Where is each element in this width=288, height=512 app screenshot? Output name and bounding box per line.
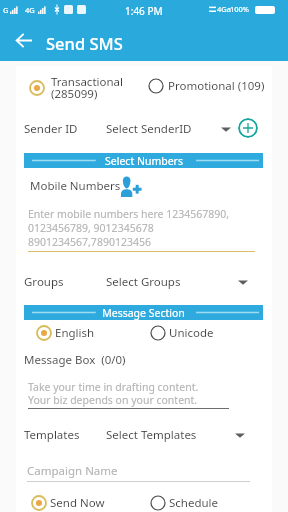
staticText: Unicode	[169, 325, 214, 341]
button[interactable]: English	[36, 323, 95, 343]
staticText: Select SenderID	[106, 121, 192, 137]
staticText: 100%	[230, 4, 250, 14]
staticText: Select Groups	[106, 274, 181, 290]
staticText: Send SMS	[46, 32, 123, 54]
staticText: Message Box (0/0)	[24, 352, 126, 368]
staticText: G	[3, 5, 9, 15]
staticText: Enter mobile numbers here 1234567890, 01…	[28, 207, 256, 249]
staticText: Campaign Name	[27, 463, 118, 479]
staticText: Message Section	[102, 306, 185, 320]
staticText: Schedule	[169, 495, 219, 511]
button[interactable]: Add sender ID	[238, 118, 258, 138]
button[interactable]: Select Groups	[106, 274, 248, 290]
staticText: English	[55, 325, 95, 341]
staticText: Groups	[24, 274, 64, 290]
staticText: 4Ga	[217, 4, 231, 14]
button[interactable]: Select SenderID	[106, 121, 231, 137]
staticText: Select Numbers	[105, 154, 183, 168]
button[interactable]: Send Now	[31, 493, 105, 512]
button[interactable]: Schedule	[150, 493, 219, 512]
staticText: Promotional (109)	[168, 78, 265, 94]
staticText: Take your time in drafting content. Your…	[28, 380, 199, 407]
staticText: Select Templates	[106, 427, 197, 443]
staticText: 1:46 PM	[125, 4, 163, 18]
staticText: 4G	[25, 5, 35, 15]
button[interactable]: Select Templates	[106, 427, 245, 443]
button[interactable]: Back	[10, 26, 38, 54]
button[interactable]: Promotional (109)	[148, 76, 265, 96]
staticText: Templates	[24, 427, 80, 443]
staticText: Mobile Numbers	[30, 178, 121, 194]
staticText: Sender ID	[24, 121, 78, 137]
staticText: Send Now	[50, 495, 105, 511]
staticText: Transactional (285099)	[51, 74, 123, 101]
button[interactable]: Unicode	[150, 323, 214, 343]
button[interactable]: Add contacts	[121, 176, 142, 197]
button[interactable]: Transactional (285099)	[29, 72, 123, 103]
